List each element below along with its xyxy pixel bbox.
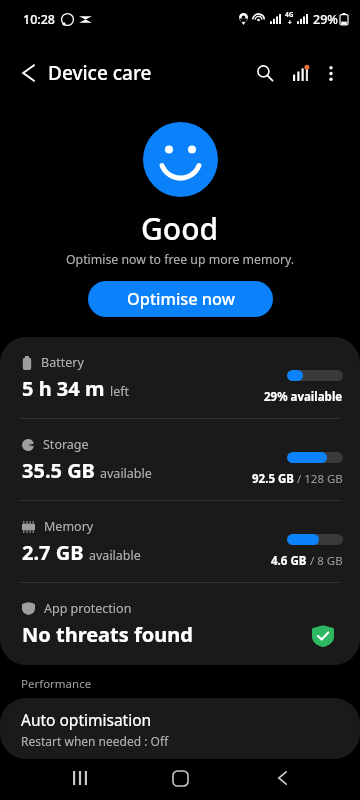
button[interactable]: Navigate up: [8, 53, 48, 93]
staticText: 10:28: [23, 11, 56, 28]
button[interactable]: Optimise now: [88, 281, 273, 317]
staticText: Memory: [44, 518, 94, 535]
staticText: 5 h 34 m: [22, 375, 105, 402]
staticText: available: [100, 465, 152, 482]
button[interactable]: Back: [258, 762, 306, 794]
staticText: Device care: [48, 60, 152, 86]
staticText: / 8 GB: [307, 553, 343, 569]
button[interactable]: Search: [245, 53, 285, 93]
button[interactable]: Memory: [0, 501, 360, 582]
staticText: 29%: [313, 11, 338, 28]
staticText: / 128 GB: [294, 471, 343, 487]
staticText: No threats found: [22, 621, 193, 648]
staticText: left: [110, 383, 130, 400]
staticText: App protection: [44, 600, 132, 617]
staticText: Battery: [41, 354, 84, 371]
staticText: Good: [141, 208, 219, 249]
staticText: Auto optimisation: [21, 709, 152, 730]
button[interactable]: App protection: [0, 583, 360, 665]
button[interactable]: More options: [311, 53, 351, 93]
staticText: Optimise now: [127, 288, 235, 310]
staticText: 2.7 GB: [22, 539, 84, 566]
staticText: Storage: [43, 436, 89, 453]
staticText: 4G: [285, 10, 294, 19]
staticText: Performance: [21, 676, 92, 692]
button[interactable]: Usage history: [280, 53, 320, 93]
button[interactable]: Battery: [0, 337, 360, 418]
staticText: 29% available: [264, 389, 343, 405]
button[interactable]: Storage: [0, 419, 360, 500]
button[interactable]: Auto optimisation: [0, 698, 360, 759]
staticText: 92.5 GB: [252, 471, 294, 487]
staticText: Restart when needed : Off: [21, 733, 169, 749]
staticText: available: [89, 547, 141, 564]
staticText: 35.5 GB: [22, 457, 95, 484]
staticText: Optimise now to free up more memory.: [66, 251, 295, 268]
staticText: 4.6 GB: [271, 553, 307, 569]
button[interactable]: Home: [156, 762, 204, 794]
button[interactable]: Recent apps: [56, 762, 104, 794]
staticText: +: [288, 18, 292, 27]
